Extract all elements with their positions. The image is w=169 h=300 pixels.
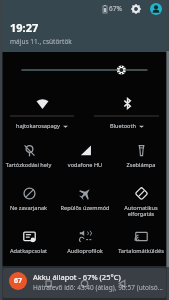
staticText: Hátralevő idő: 43:40 (átlag), 9b:57 (uto… <box>33 283 163 292</box>
staticText: Zseblámpa <box>113 161 169 169</box>
button[interactable]: Ne zavarjanak <box>0 178 57 221</box>
staticText: Automatikus elforgatás <box>113 204 169 218</box>
button[interactable]: Tartalomátküldés <box>113 221 169 262</box>
staticText: Adatkapcsolat <box>0 247 57 255</box>
button[interactable]: Automatikus elforgatás <box>113 178 169 221</box>
staticText: 67 <box>14 276 23 286</box>
staticText: 67% <box>109 4 122 13</box>
button[interactable]: User profile <box>149 2 163 16</box>
button[interactable]: Settings <box>129 2 143 16</box>
button[interactable]: Adatkapcsolat <box>0 221 57 262</box>
button[interactable]: vodafone HU <box>57 135 113 178</box>
staticText: Ne zavarjanak <box>0 204 57 212</box>
button[interactable]: Audioprofilok <box>57 221 113 262</box>
button[interactable]: Tartózkodási hely <box>0 135 57 178</box>
button[interactable]: Brightness <box>0 52 169 88</box>
staticText: Akku állapot - 67% (25°C) <box>33 272 121 282</box>
staticText: május 11., csütörtök <box>10 37 72 46</box>
staticText: Audioprofilok <box>57 247 113 255</box>
staticText: Repülős üzemmód <box>57 204 113 212</box>
staticText: 19:27 <box>10 20 39 35</box>
button[interactable]: 67 <box>3 268 166 298</box>
button[interactable]: Zseblámpa <box>113 135 169 178</box>
staticText: Bluetooth <box>110 122 136 130</box>
staticText: Tartalomátküldés <box>113 247 169 255</box>
staticText: vodafone HU <box>57 161 113 169</box>
button[interactable]: hajtokarosapagy <box>0 88 84 135</box>
button[interactable]: Bluetooth <box>84 88 169 135</box>
staticText: Tartózkodási hely <box>0 161 57 169</box>
button[interactable]: Repülős üzemmód <box>57 178 113 221</box>
staticText: hajtokarosapagy <box>16 122 60 130</box>
